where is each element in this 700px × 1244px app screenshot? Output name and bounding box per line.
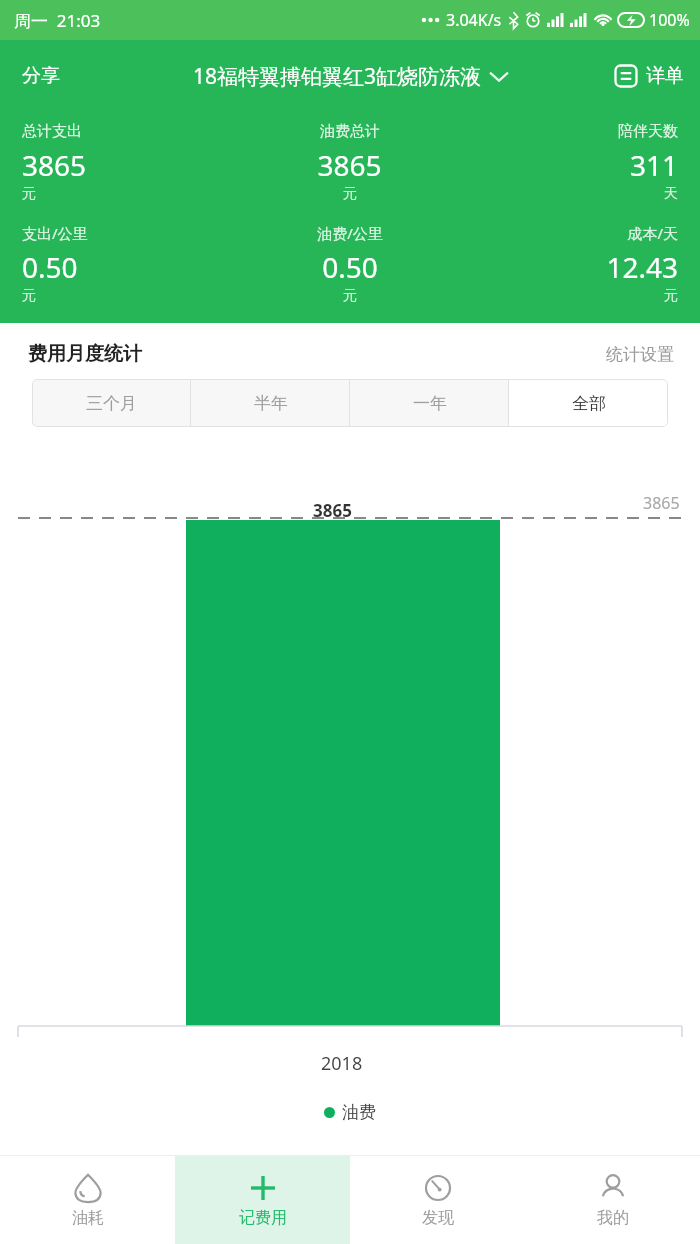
staticText: 2018	[321, 1051, 363, 1076]
button[interactable]: 一年	[350, 379, 509, 427]
staticText: 元	[22, 287, 36, 305]
staticText: 半年	[254, 393, 288, 414]
staticText: 分享	[22, 64, 60, 88]
staticText: 元	[343, 287, 357, 305]
staticText: 我的	[597, 1208, 629, 1228]
staticText: 详单	[646, 64, 684, 88]
staticText: 全部	[572, 393, 606, 414]
staticText: 元	[664, 287, 678, 305]
button[interactable]: 记费用	[175, 1156, 350, 1244]
button[interactable]: 三个月	[32, 379, 191, 427]
staticText: 0.50	[322, 248, 378, 286]
staticText: 3865	[22, 146, 87, 184]
staticText: 元	[343, 185, 357, 203]
button[interactable]: 分享	[0, 54, 82, 98]
staticText: 周一 21:03	[14, 9, 101, 32]
staticText: 12.43	[606, 248, 678, 286]
staticText: 311	[629, 146, 678, 184]
staticText: 总计支出	[22, 122, 82, 141]
staticText: 3865	[317, 146, 382, 184]
button[interactable]: 我的	[525, 1156, 700, 1244]
button[interactable]: 全部	[509, 379, 668, 427]
button[interactable]: 油耗	[0, 1156, 175, 1244]
staticText: 3865	[313, 499, 352, 522]
staticText: 油费总计	[320, 122, 380, 141]
button[interactable]: 发现	[350, 1156, 525, 1244]
staticText: 3865	[643, 492, 680, 514]
staticText: 油费	[342, 1102, 376, 1123]
button[interactable]: 统计设置	[580, 336, 700, 373]
staticText: 成本/天	[627, 223, 678, 243]
staticText: 100%	[649, 9, 690, 31]
staticText: 费用月度统计	[28, 342, 142, 366]
staticText: 元	[22, 185, 36, 203]
staticText: 支出/公里	[22, 223, 88, 243]
button[interactable]: 半年	[191, 379, 350, 427]
staticText: 三个月	[86, 393, 137, 414]
staticText: 陪伴天数	[618, 122, 678, 141]
staticText: 18福特翼搏铂翼红3缸烧防冻液	[193, 62, 482, 91]
staticText: 3.04K/s	[446, 9, 502, 31]
staticText: 0.50	[22, 248, 78, 286]
staticText: 油费/公里	[317, 223, 383, 243]
staticText: 统计设置	[606, 344, 674, 365]
staticText: 发现	[422, 1208, 454, 1228]
staticText: 天	[664, 185, 678, 203]
staticText: 油耗	[72, 1208, 104, 1228]
button[interactable]: 18福特翼搏铂翼红3缸烧防冻液	[187, 56, 514, 97]
staticText: 一年	[413, 393, 447, 414]
button[interactable]: 详单	[598, 56, 700, 96]
staticText: 记费用	[239, 1208, 287, 1228]
